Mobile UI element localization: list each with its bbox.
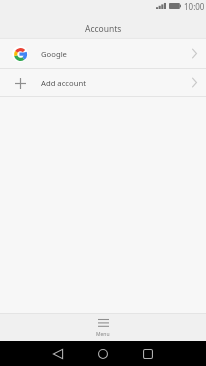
staticText: 10:00 <box>184 1 205 12</box>
button[interactable]: Back <box>43 341 73 366</box>
staticText: Google <box>41 49 67 59</box>
button[interactable]: Menu <box>0 314 206 341</box>
button[interactable]: Recent apps <box>133 341 163 366</box>
staticText: Add account <box>41 78 86 88</box>
button[interactable]: Google <box>0 39 206 68</box>
button[interactable]: Home <box>88 341 118 366</box>
staticText: Menu <box>96 331 110 338</box>
staticText: Accounts <box>85 23 122 35</box>
button[interactable]: Add account <box>0 69 206 96</box>
